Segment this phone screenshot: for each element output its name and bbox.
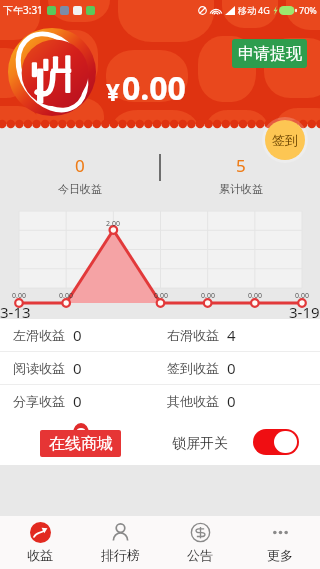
staticText: 2.00: [106, 219, 120, 229]
staticText: 更多: [267, 547, 293, 563]
staticText: 下午3:31: [3, 3, 43, 17]
button[interactable]: 签到: [262, 117, 308, 163]
staticText: 分享收益: [13, 393, 65, 409]
staticText: 其他收益: [167, 393, 219, 409]
button[interactable]: 更多: [240, 516, 320, 569]
staticText: 0.00: [248, 291, 262, 301]
staticText: 0.00: [295, 291, 309, 301]
staticText: 申请提现: [238, 44, 302, 64]
staticText: 公告: [187, 547, 213, 563]
button[interactable]: 排行榜: [80, 516, 160, 569]
staticText: 0: [73, 325, 82, 345]
button[interactable]: 申请提现: [232, 39, 307, 68]
staticText: 0: [73, 358, 82, 378]
staticText: 0.00: [201, 291, 215, 301]
staticText: 0: [227, 358, 236, 378]
staticText: 阅读收益: [13, 360, 65, 376]
staticText: 5: [236, 154, 246, 177]
staticText: 签到收益: [167, 360, 219, 376]
staticText: 锁屏开关: [172, 435, 228, 453]
button[interactable]: 公告: [160, 516, 240, 569]
staticText: 70%: [299, 4, 317, 16]
staticText: 0.00: [59, 291, 73, 301]
staticText: 0: [75, 154, 85, 177]
staticText: 4G: [258, 4, 270, 16]
button[interactable]: 锁屏开关: [253, 429, 299, 455]
staticText: 收益: [27, 547, 53, 563]
staticText: 3-13: [0, 302, 31, 322]
staticText: 右滑收益: [167, 327, 219, 343]
staticText: 0.00: [154, 291, 168, 301]
staticText: 0.00: [122, 66, 186, 110]
button[interactable]: 在线商城: [40, 430, 121, 457]
staticText: 在线商城: [49, 434, 113, 454]
staticText: 签到: [272, 132, 298, 148]
staticText: 排行榜: [101, 547, 140, 563]
staticText: 今日收益: [58, 182, 102, 196]
staticText: 移动: [238, 5, 256, 16]
staticText: ¥: [106, 75, 120, 108]
staticText: 3-19: [289, 302, 320, 322]
button[interactable]: 收益: [0, 516, 80, 569]
staticText: 0: [227, 391, 236, 411]
staticText: 左滑收益: [13, 327, 65, 343]
staticText: 0: [73, 391, 82, 411]
staticText: 4: [227, 325, 236, 345]
staticText: 0.00: [12, 291, 26, 301]
staticText: 累计收益: [219, 182, 263, 196]
